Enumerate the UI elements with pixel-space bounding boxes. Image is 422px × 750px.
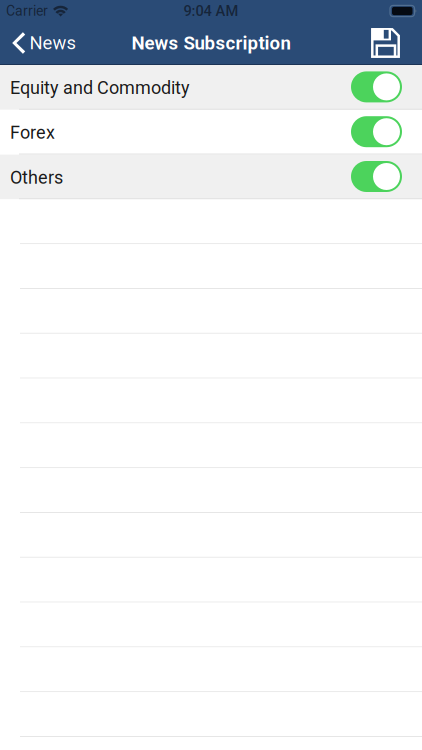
staticText: Forex [10, 122, 55, 143]
button[interactable]: Equity and Commodity [0, 65, 422, 110]
button[interactable]: Forex [0, 110, 422, 155]
staticText: News Subscription [131, 32, 290, 54]
staticText: Equity and Commodity [10, 77, 190, 98]
staticText: News [29, 32, 75, 54]
staticText: Carrier [6, 3, 48, 19]
button[interactable]: Others [0, 155, 422, 199]
staticText: Others [10, 167, 63, 188]
staticText: 9:04 AM [183, 2, 238, 20]
button[interactable]: News [0, 22, 83, 64]
button[interactable]: Save [357, 22, 422, 63]
